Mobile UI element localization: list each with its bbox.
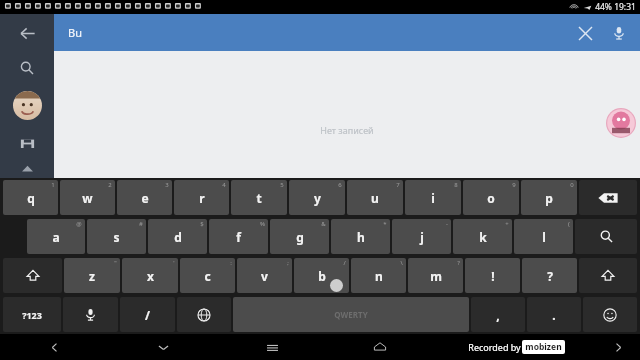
button[interactable]: 8: [405, 180, 461, 215]
staticText: /: [343, 259, 346, 267]
staticText: i: [431, 190, 435, 206]
button[interactable]: 4: [174, 180, 229, 215]
staticText: ": [114, 259, 117, 267]
button[interactable]: Back: [0, 14, 54, 52]
button[interactable]: &: [270, 219, 329, 254]
button[interactable]: Emoji: [583, 297, 637, 332]
button[interactable]: ?123: [3, 297, 61, 332]
button[interactable]: Hide keyboard: [109, 334, 218, 360]
button[interactable]: (: [514, 219, 573, 254]
staticText: .: [552, 307, 556, 323]
staticText: 1: [51, 181, 55, 189]
button[interactable]: More: [0, 160, 54, 178]
staticText: :: [230, 259, 232, 267]
staticText: g: [296, 229, 304, 245]
button[interactable]: Profile: [0, 84, 54, 126]
button[interactable]: Clear: [568, 16, 602, 50]
button[interactable]: *: [331, 219, 390, 254]
staticText: t: [256, 190, 262, 206]
button[interactable]: Backspace: [579, 180, 637, 215]
button[interactable]: /: [294, 258, 349, 293]
button[interactable]: -: [392, 219, 451, 254]
button[interactable]: Recents: [218, 334, 326, 360]
staticText: 0: [570, 181, 574, 189]
staticText: 2: [108, 181, 112, 189]
button[interactable]: Back: [0, 334, 109, 360]
button[interactable]: Voice input: [63, 297, 118, 332]
staticText: \: [400, 259, 403, 267]
button[interactable]: .: [527, 297, 581, 332]
button[interactable]: Archive: [0, 126, 54, 160]
staticText: ;: [287, 259, 289, 267]
staticText: 3: [165, 181, 169, 189]
staticText: 8: [454, 181, 458, 189]
staticText: #: [139, 220, 143, 228]
staticText: ?: [457, 259, 460, 267]
button[interactable]: QWERTY: [233, 297, 469, 332]
button[interactable]: ": [64, 258, 120, 293]
staticText: *: [383, 220, 387, 228]
button[interactable]: ;: [237, 258, 292, 293]
button[interactable]: Voice search: [602, 16, 636, 50]
staticText: r: [199, 190, 205, 206]
staticText: o: [487, 190, 495, 206]
staticText: 5: [280, 181, 284, 189]
staticText: @: [76, 220, 82, 228]
button[interactable]: Home: [326, 334, 434, 360]
button[interactable]: :: [180, 258, 235, 293]
button[interactable]: Search: [0, 52, 54, 84]
button[interactable]: Forward: [597, 334, 640, 360]
staticText: v: [261, 268, 268, 284]
staticText: /: [145, 307, 150, 323]
button[interactable]: @: [27, 219, 85, 254]
button[interactable]: 3: [117, 180, 172, 215]
staticText: h: [357, 229, 365, 245]
button[interactable]: /: [120, 297, 175, 332]
staticText: s: [113, 229, 120, 245]
staticText: 4: [222, 181, 226, 189]
staticText: y: [314, 190, 321, 206]
staticText: QWERTY: [334, 309, 368, 320]
staticText: u: [371, 190, 379, 206]
staticText: $: [200, 220, 204, 228]
button[interactable]: ': [122, 258, 178, 293]
staticText: f: [236, 229, 241, 245]
staticText: n: [375, 268, 383, 284]
button[interactable]: 6: [289, 180, 345, 215]
button[interactable]: \: [351, 258, 406, 293]
staticText: l: [542, 229, 546, 245]
staticText: z: [89, 268, 95, 284]
button[interactable]: Floating widget: [606, 108, 636, 138]
staticText: 7: [396, 181, 400, 189]
button[interactable]: Shift: [579, 258, 637, 293]
staticText: -: [446, 220, 448, 228]
button[interactable]: 5: [231, 180, 287, 215]
button[interactable]: ,: [471, 297, 525, 332]
button[interactable]: 1: [3, 180, 58, 215]
button[interactable]: +: [453, 219, 512, 254]
button[interactable]: Search: [575, 219, 637, 254]
button[interactable]: Bu: [54, 14, 640, 51]
button[interactable]: #: [87, 219, 146, 254]
staticText: d: [174, 229, 182, 245]
button[interactable]: 0: [521, 180, 577, 215]
staticText: 6: [338, 181, 342, 189]
staticText: x: [147, 268, 154, 284]
button[interactable]: Shift: [3, 258, 62, 293]
staticText: &: [321, 220, 326, 228]
button[interactable]: 9: [463, 180, 519, 215]
button[interactable]: Change language: [177, 297, 231, 332]
staticText: Bu: [68, 25, 82, 40]
staticText: p: [545, 190, 553, 206]
button[interactable]: 7: [347, 180, 403, 215]
staticText: ,: [496, 307, 500, 323]
button[interactable]: 2: [60, 180, 115, 215]
button[interactable]: $: [148, 219, 207, 254]
button[interactable]: ?: [522, 258, 577, 293]
button[interactable]: ?: [408, 258, 463, 293]
staticText: Recorded by: [467, 341, 522, 353]
button[interactable]: !: [465, 258, 520, 293]
staticText: %: [260, 220, 265, 228]
button[interactable]: %: [209, 219, 268, 254]
staticText: w: [82, 190, 93, 206]
